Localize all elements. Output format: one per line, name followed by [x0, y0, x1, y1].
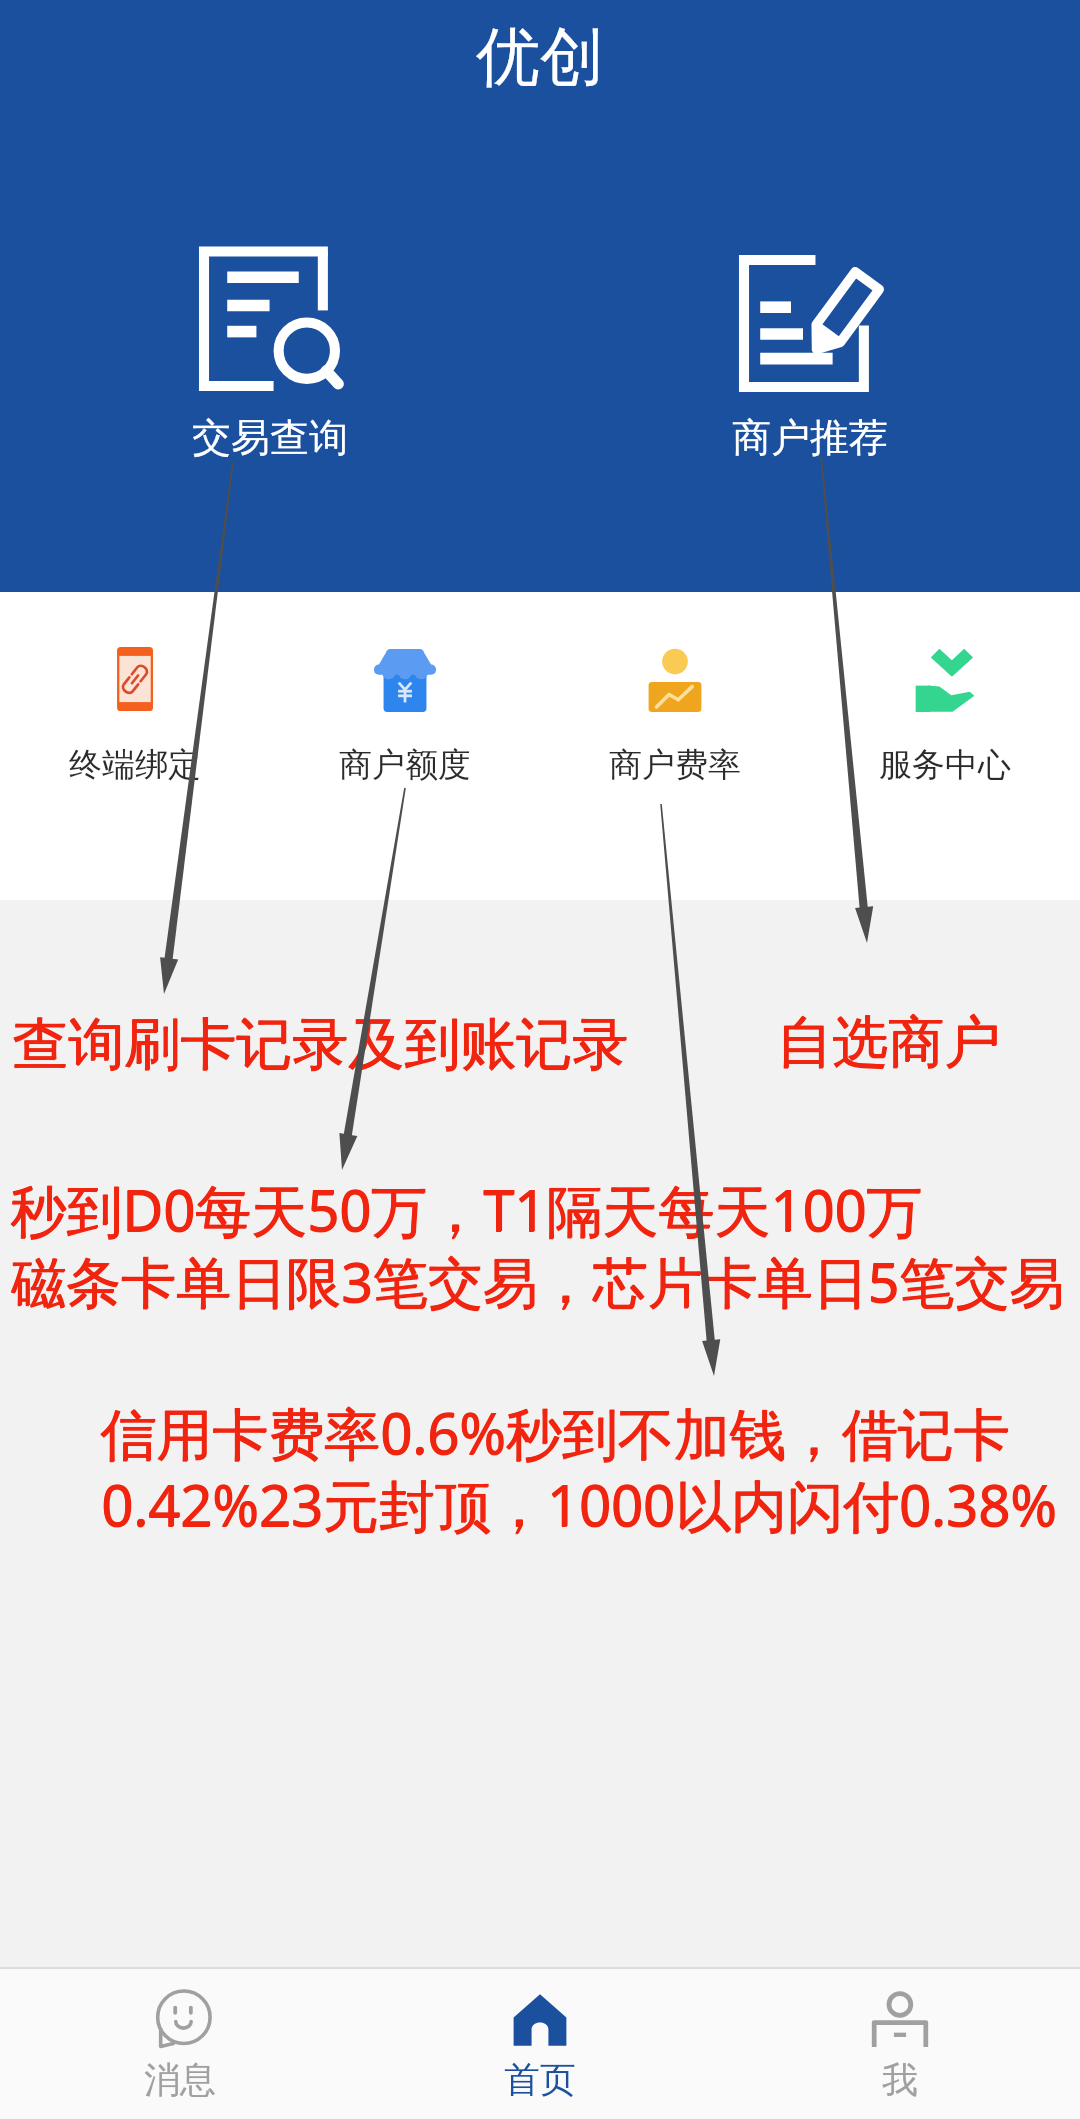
button[interactable]: 我 [720, 1967, 1080, 2119]
button[interactable]: Transaction query [152, 243, 388, 464]
staticText: 秒到D0每天50万，T1隔天每天100万 [10, 1172, 923, 1248]
button[interactable]: Merchant recommend [692, 243, 928, 464]
staticText: 秒到D0每天50万，T1隔天每天100万 [10, 1171, 923, 1247]
staticText: 0.42%23元封顶，1000以内闪付0.38% [101, 1466, 1057, 1542]
button[interactable]: 首页 [360, 1967, 720, 2119]
other: Transaction query [197, 245, 343, 391]
staticText: 交易查询 [192, 413, 348, 462]
button[interactable]: 消息 [0, 1967, 360, 2119]
staticText: 查询刷卡记录及到账记录 [13, 1009, 629, 1080]
staticText: 优创 [476, 17, 604, 98]
staticText: 商户额度 [339, 744, 471, 786]
staticText: 磁条卡单日限3笔交易，芯片卡单日5笔交易 [11, 1244, 1064, 1319]
staticText: 查询刷卡记录及到账记录 [12, 1009, 628, 1080]
staticText: 服务中心 [879, 744, 1011, 786]
staticText: 我 [882, 2057, 918, 2102]
staticText: 消息 [144, 2057, 216, 2102]
staticText: 0.42%23元封顶，1000以内闪付0.38% [101, 1467, 1057, 1543]
staticText: 查询刷卡记录及到账记录 [12, 1010, 628, 1081]
button[interactable]: 商户额度 [295, 646, 515, 786]
staticText: 自选商户 [777, 1007, 1001, 1078]
staticText: 首页 [504, 2057, 576, 2102]
button[interactable]: 服务中心 [835, 646, 1055, 786]
staticText: 商户费率 [609, 744, 741, 786]
staticText: 自选商户 [776, 1008, 1000, 1079]
staticText: 信用卡费率0.6%秒到不加钱，借记卡 [100, 1394, 1010, 1470]
staticText: 磁条卡单日限3笔交易，芯片卡单日5笔交易 [11, 1243, 1064, 1318]
staticText: 终端绑定 [69, 744, 201, 786]
staticText: 自选商户 [776, 1007, 1000, 1078]
staticText: 0.42%23元封顶，1000以内闪付0.38% [102, 1466, 1058, 1542]
other: Merchant recommend [737, 245, 883, 391]
staticText: 信用卡费率0.6%秒到不加钱，借记卡 [101, 1394, 1011, 1470]
staticText: 信用卡费率0.6%秒到不加钱，借记卡 [100, 1395, 1010, 1471]
staticText: 秒到D0每天50万，T1隔天每天100万 [11, 1171, 924, 1247]
staticText: 商户推荐 [732, 413, 888, 462]
button[interactable]: 商户费率 [565, 646, 785, 786]
button[interactable]: 终端绑定 [25, 646, 245, 786]
staticText: 磁条卡单日限3笔交易，芯片卡单日5笔交易 [12, 1243, 1065, 1318]
